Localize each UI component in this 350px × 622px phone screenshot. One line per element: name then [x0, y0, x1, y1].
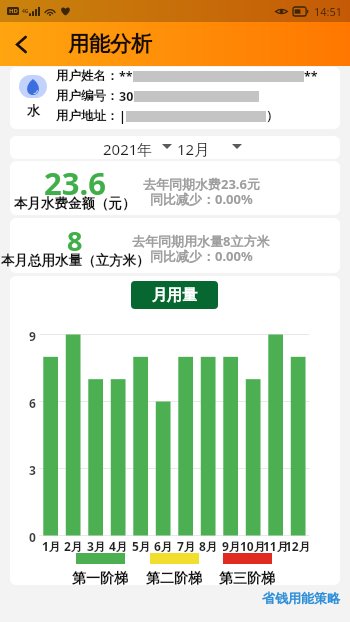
staticText: 水 [27, 102, 40, 118]
staticText: 第三阶梯 [219, 570, 275, 588]
staticText: ** [119, 68, 133, 85]
staticText: 用户编号： [56, 88, 119, 104]
staticText: 5月 [132, 538, 151, 554]
staticText: 30 [119, 88, 134, 105]
staticText: 8月 [199, 538, 218, 554]
staticText: 4月 [109, 538, 128, 554]
staticText: 本月水费金额（元） [14, 195, 136, 212]
staticText: 3 [29, 462, 36, 478]
staticText: 6月 [154, 538, 173, 554]
button[interactable]: 月用量 [131, 281, 218, 309]
staticText: 用能分析 [68, 31, 152, 57]
staticText: 本月总用水量（立方米） [1, 252, 150, 269]
staticText: 1月 [42, 538, 61, 554]
staticText: 去年同期用水量8立方米 [132, 232, 270, 250]
button[interactable] [98, 136, 170, 159]
staticText: | [119, 108, 126, 125]
staticText: HD [9, 7, 18, 15]
button[interactable]: Back [0, 23, 42, 65]
staticText: 14:51 [314, 4, 343, 19]
staticText: 8 [67, 222, 83, 259]
staticText: 7月 [177, 538, 196, 554]
staticText: 第一阶梯 [72, 570, 128, 588]
staticText: 月用量 [152, 286, 197, 305]
staticText: 4G [22, 8, 29, 15]
staticText: ** [304, 68, 318, 85]
button[interactable]: 第一阶梯 [72, 570, 128, 588]
staticText: 2021年 [103, 139, 153, 159]
staticText: 2月 [64, 538, 83, 554]
staticText: 11月 [263, 538, 289, 554]
staticText: 去年同期水费23.6元 [143, 175, 260, 193]
staticText: ） [266, 108, 279, 124]
staticText: 用户姓名： [56, 68, 119, 84]
staticText: 用户地址： [56, 108, 119, 124]
button[interactable]: 第二阶梯 [146, 570, 202, 588]
staticText: 23.6 [44, 162, 106, 204]
staticText: 第二阶梯 [146, 570, 202, 588]
staticText: 12月 [177, 139, 210, 159]
staticText: 同比减少：0.00% [150, 190, 253, 208]
staticText: 0 [29, 529, 36, 545]
staticText: 10月 [240, 538, 266, 554]
staticText: 省钱用能策略 [262, 590, 340, 606]
staticText: 9月 [222, 538, 241, 554]
button[interactable]: 省钱用能策略 [262, 590, 340, 606]
button[interactable]: 第三阶梯 [219, 570, 275, 588]
staticText: 12月 [285, 538, 311, 554]
staticText: 9 [29, 328, 36, 344]
staticText: 6 [29, 395, 36, 411]
button[interactable] [173, 136, 253, 159]
staticText: 同比减少：0.00% [150, 247, 253, 265]
staticText: 3月 [87, 538, 106, 554]
